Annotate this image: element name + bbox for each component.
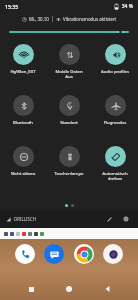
staticText: Audio profiles — [92, 68, 138, 74]
staticText: 34 % — [121, 3, 133, 10]
other: Wi-Fi — [13, 44, 34, 65]
staticText: HgWlan_EXT — [0, 68, 46, 74]
staticText: Automatisch drehen — [92, 170, 138, 181]
button[interactable]: Camera — [103, 244, 123, 264]
button[interactable]: Chrome — [74, 244, 94, 264]
button[interactable]: Settings — [120, 213, 132, 225]
staticText: Vibrationsmodus aktiviert — [63, 16, 117, 22]
button[interactable]: Home — [61, 281, 77, 297]
button[interactable]: Airplane mode — [92, 93, 138, 125]
other: Do not disturb — [13, 146, 34, 167]
other: Location — [59, 95, 80, 116]
staticText: Mi., 30.10 — [29, 16, 49, 22]
staticText: Mobile Daten Aus — [46, 68, 92, 79]
other: Auto rotate — [105, 146, 126, 167]
button[interactable]: Messages — [44, 244, 64, 264]
staticText: Bluetooth — [0, 119, 46, 125]
other: Audio profiles — [105, 44, 126, 65]
button[interactable]: Mobile data — [46, 42, 92, 79]
button[interactable]: Bluetooth — [0, 93, 46, 125]
button[interactable]: Do not disturb — [0, 144, 46, 176]
staticText: Standort — [46, 119, 92, 125]
staticText: Taschenlampe — [46, 170, 92, 176]
button[interactable]: Recents — [23, 281, 39, 297]
button[interactable]: Brightness — [9, 25, 129, 39]
other: Bluetooth — [13, 95, 34, 116]
button[interactable]: Auto rotate — [92, 144, 138, 181]
button[interactable]: Wi-Fi — [0, 42, 46, 74]
staticText: 15:35 — [5, 3, 19, 10]
button[interactable]: Back — [100, 281, 116, 297]
staticText: Flugmodus — [92, 119, 138, 125]
other: Mobile data — [59, 44, 80, 65]
button[interactable]: Edit tiles — [103, 213, 115, 225]
button[interactable]: Phone — [15, 244, 35, 264]
staticText: DRILLISCH — [14, 216, 36, 222]
other: Flashlight — [59, 146, 80, 167]
button[interactable]: Location — [46, 93, 92, 125]
other: Airplane mode — [105, 95, 126, 116]
staticText: Nicht stören — [0, 170, 46, 176]
button[interactable]: Flashlight — [46, 144, 92, 176]
button[interactable]: Audio profiles — [92, 42, 138, 74]
